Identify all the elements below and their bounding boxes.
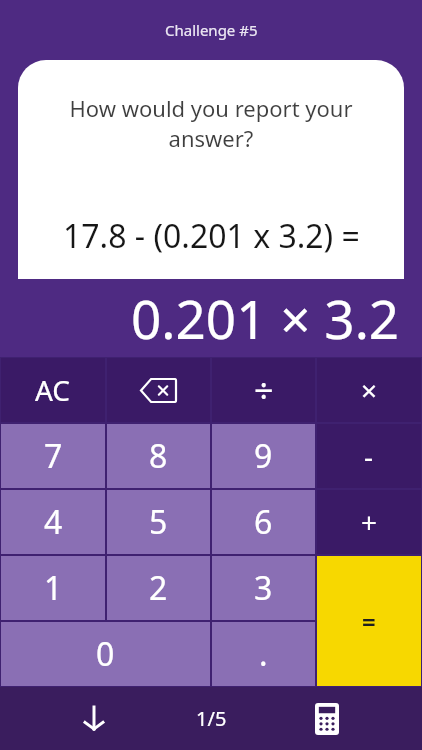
button[interactable]: × [317,358,421,422]
staticText: 2 [149,566,168,610]
staticText: 1/5 [196,705,227,732]
button[interactable]: 8 [107,424,210,488]
staticText: × [361,371,378,409]
button[interactable]: 3 [212,556,315,620]
button[interactable]: + [317,490,421,554]
staticText: ÷ [254,367,274,413]
staticText: 0.201 × 3.2 [131,282,400,354]
button[interactable]: 9 [212,424,315,488]
button[interactable] [107,358,210,422]
button[interactable]: = [317,556,421,686]
staticText: 8 [149,434,168,478]
button[interactable]: AC [1,358,105,422]
button[interactable]: 6 [212,490,315,554]
staticText: = [362,605,376,638]
button[interactable] [74,699,114,739]
staticText: AC [35,371,71,409]
button[interactable]: 5 [107,490,210,554]
staticText: 0 [96,632,115,676]
button[interactable]: . [212,622,315,686]
staticText: 1 [44,566,63,610]
button[interactable]: ÷ [212,358,315,422]
button[interactable]: 1 [1,556,105,620]
staticText: Challenge #5 [165,20,258,40]
button[interactable]: 4 [1,490,105,554]
staticText: + [361,503,378,541]
button[interactable]: 2 [107,556,210,620]
staticText: 3 [254,566,273,610]
button[interactable]: - [317,424,421,488]
staticText: . [259,632,268,676]
button[interactable]: 7 [1,424,105,488]
staticText: 4 [44,500,63,544]
staticText: 6 [254,500,273,544]
button[interactable] [307,699,347,739]
button[interactable]: 0 [1,622,210,686]
staticText: 17.8 - (0.201 x 3.2) = [63,214,360,258]
staticText: How would you report your answer? [69,93,353,153]
staticText: - [364,437,374,475]
staticText: 9 [254,434,273,478]
staticText: 5 [149,500,168,544]
staticText: 7 [44,434,63,478]
